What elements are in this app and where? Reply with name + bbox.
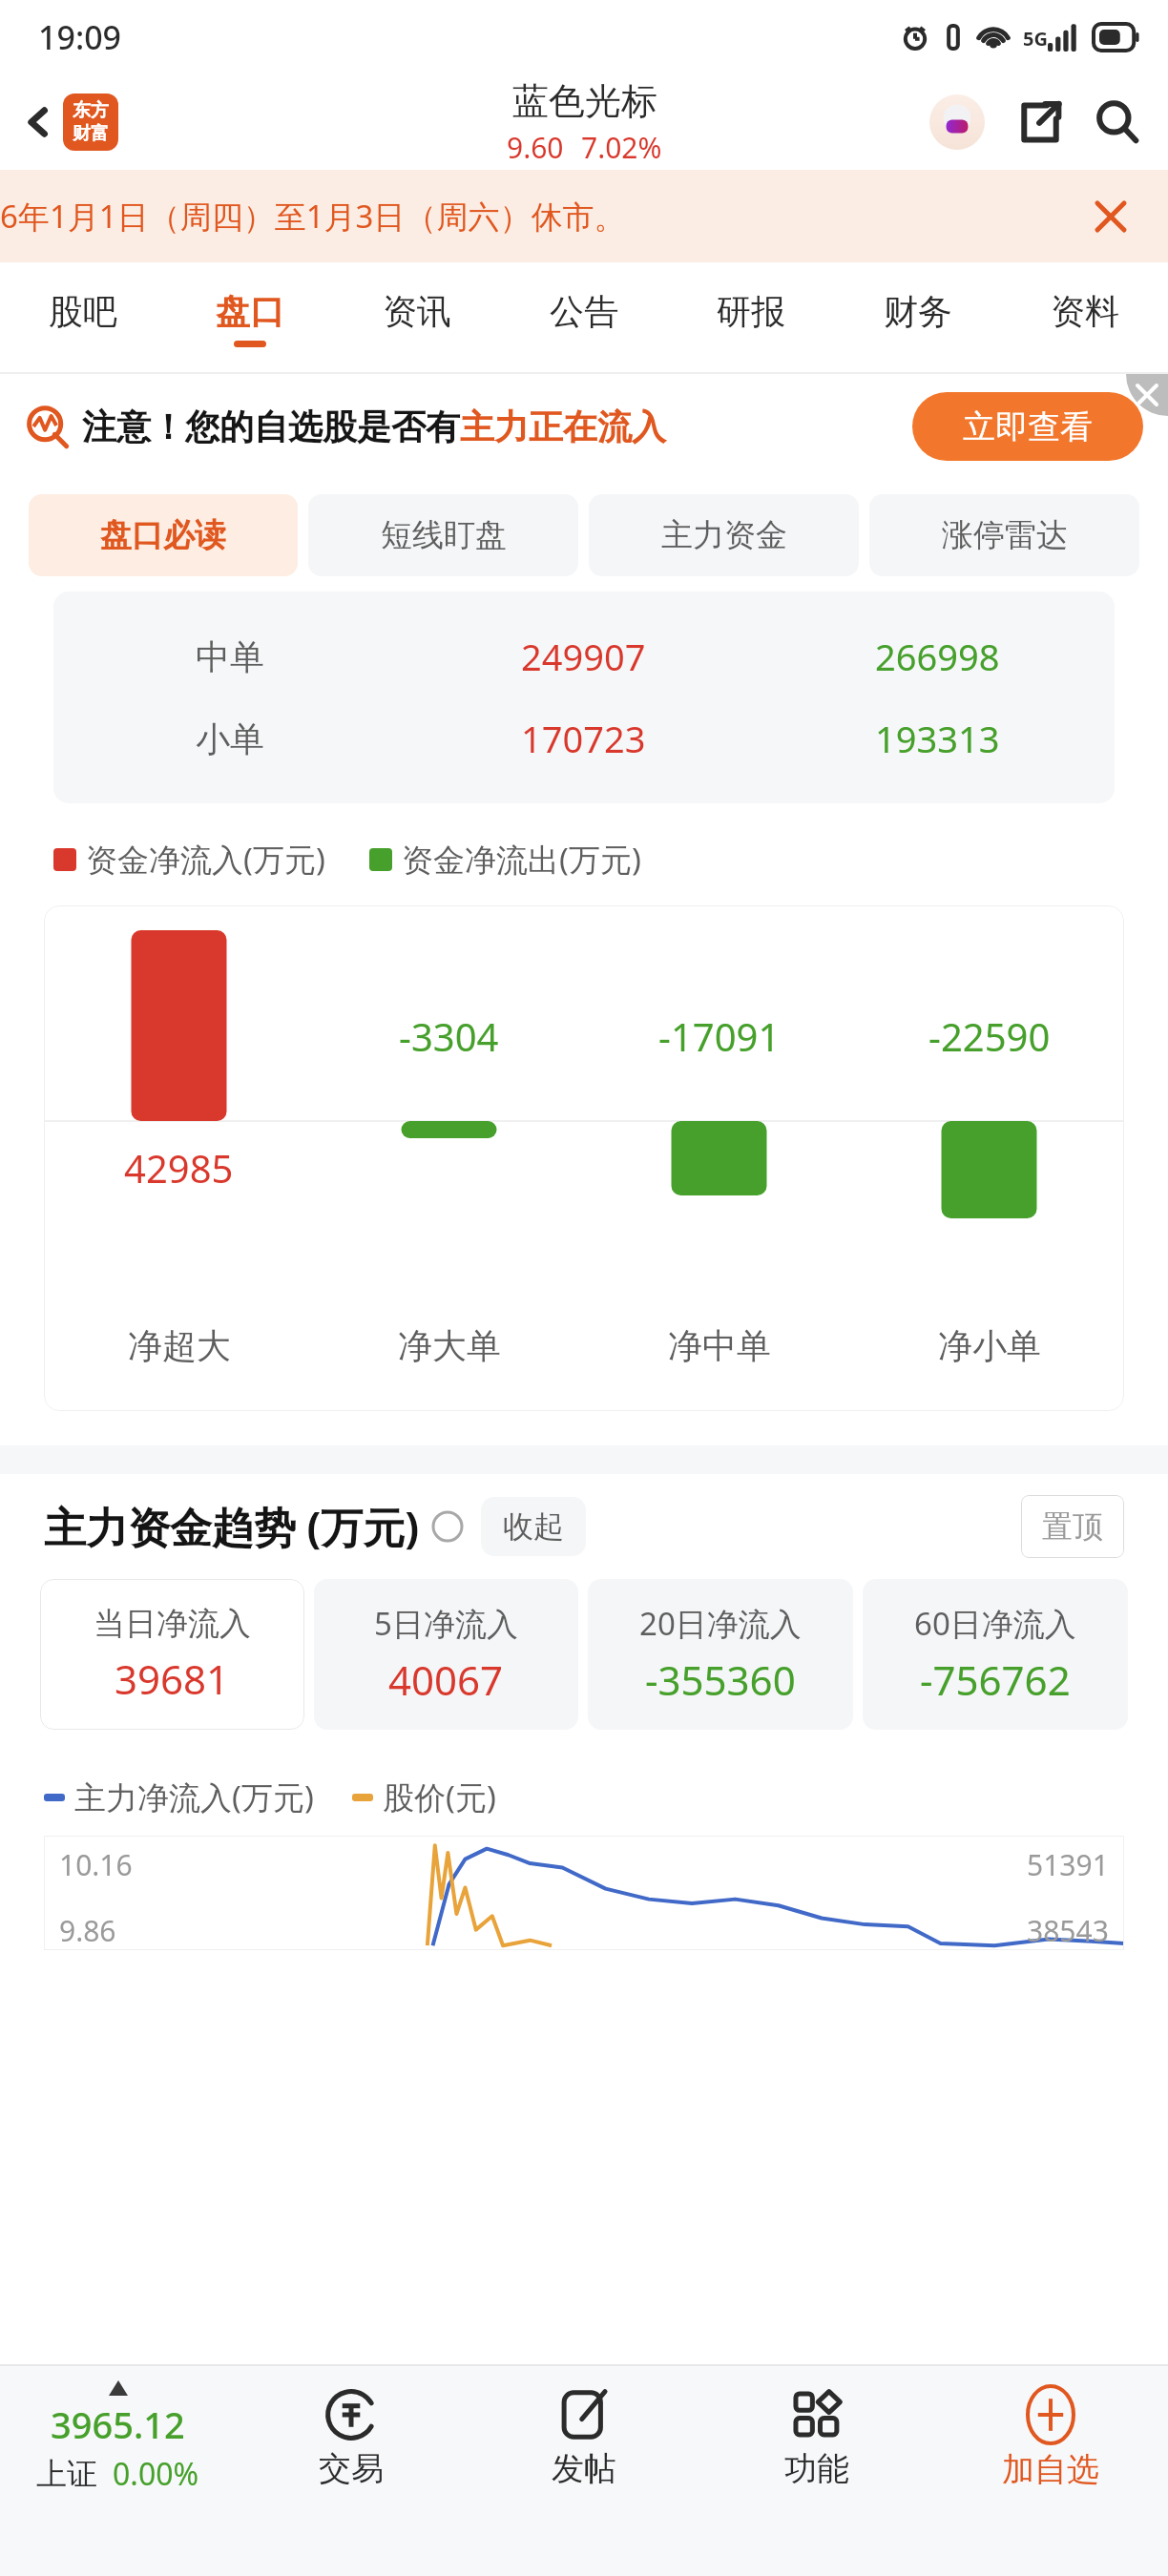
staticText: 发帖 (552, 2448, 616, 2489)
button[interactable]: 20日净流入 (588, 1579, 853, 1730)
staticText: 当日净流入 (94, 1604, 251, 1644)
staticText: 净小单 (938, 1324, 1041, 1367)
staticText: 股吧 (49, 290, 117, 333)
staticText: 财富 (73, 122, 109, 145)
staticText: 中单 (196, 635, 264, 678)
staticText: 10.16 (59, 1845, 133, 1884)
staticText: -355360 (645, 1652, 796, 1707)
staticText: 短线盯盘 (381, 515, 507, 555)
staticText: 涨停雷达 (942, 515, 1068, 555)
staticText: 38543 (1027, 1911, 1109, 1950)
staticText: 5G (1023, 26, 1048, 52)
staticText: 盘口必读 (100, 515, 226, 555)
staticText: 财务 (884, 290, 952, 333)
staticText: 5日净流入 (374, 1602, 518, 1645)
staticText: 3965.12 (51, 2399, 185, 2449)
staticText: 资金净流出(万元) (402, 838, 641, 881)
staticText: 资料 (1051, 290, 1119, 333)
staticText: 净中单 (668, 1324, 771, 1367)
staticText: 39681 (115, 1652, 230, 1706)
staticText: 0.00% (113, 2453, 199, 2495)
staticText: 42985 (124, 1142, 234, 1194)
staticText: 19:09 (38, 15, 122, 59)
button[interactable]: 60日净流入 (863, 1579, 1128, 1730)
button[interactable]: 盘口 (166, 262, 333, 374)
button[interactable]: Back (13, 86, 126, 158)
button[interactable]: Close notice (1094, 199, 1128, 234)
staticText: 266998 (875, 632, 1000, 681)
button[interactable]: 资料 (1001, 262, 1168, 374)
button[interactable]: 发帖 (468, 2366, 700, 2509)
staticText: -22590 (928, 1010, 1051, 1062)
staticText: 9.86 (59, 1911, 116, 1950)
staticText: -756762 (920, 1652, 1071, 1707)
staticText: -17091 (658, 1010, 781, 1062)
button[interactable]: 资讯 (333, 262, 500, 374)
staticText: 9.60 (507, 128, 564, 167)
button[interactable]: Help (431, 1510, 464, 1543)
button[interactable]: AI assistant (929, 94, 985, 150)
staticText: 249907 (521, 632, 646, 681)
button[interactable]: Share (1019, 101, 1061, 143)
button[interactable]: 立即查看 (912, 392, 1143, 461)
button[interactable]: 收起 (481, 1497, 586, 1556)
staticText: 193313 (875, 714, 1000, 763)
staticText: 资金净流入(万元) (86, 838, 325, 881)
staticText: 主力净流入(万元) (74, 1776, 314, 1818)
button[interactable]: 当日净流入 (40, 1579, 304, 1730)
staticText: 20日净流入 (639, 1602, 802, 1645)
staticText: 蓝色光标 (512, 78, 657, 124)
staticText: 公告 (550, 290, 618, 333)
staticText: 收起 (503, 1507, 564, 1546)
staticText: 注意！您的自选股是否有 (82, 405, 460, 448)
button[interactable]: 短线盯盘 (308, 494, 578, 576)
staticText: 研报 (717, 290, 785, 333)
staticText: 净大单 (398, 1324, 501, 1367)
button[interactable]: 涨停雷达 (869, 494, 1139, 576)
staticText: 加自选 (1002, 2449, 1099, 2490)
staticText: 6年1月1日（周四）至1月3日（周六）休市。 (0, 195, 626, 238)
button[interactable]: 加自选 (933, 2366, 1168, 2509)
staticText: 东方 (73, 99, 109, 122)
staticText: 上证 (36, 2455, 97, 2493)
button[interactable]: 3965.12 (0, 2366, 235, 2509)
staticText: 60日净流入 (914, 1602, 1076, 1645)
staticText: 股价(元) (383, 1776, 496, 1818)
staticText: 功能 (784, 2448, 849, 2489)
staticText: 主力资金趋势 (万元) (44, 1498, 420, 1555)
button[interactable]: 盘口必读 (29, 494, 298, 576)
staticText: 资讯 (383, 290, 451, 333)
staticText: 净超大 (128, 1324, 231, 1367)
button[interactable]: Search (1095, 100, 1139, 144)
button[interactable]: 公告 (500, 262, 667, 374)
staticText: 交易 (319, 2448, 384, 2489)
staticText: 170723 (521, 714, 646, 763)
button[interactable]: 主力资金 (589, 494, 859, 576)
staticText: -3304 (399, 1010, 499, 1062)
staticText: 小单 (196, 717, 264, 760)
staticText: 盘口 (216, 290, 284, 333)
button[interactable]: 注意！您的自选股是否有 (25, 374, 1143, 479)
button[interactable]: 研报 (667, 262, 834, 374)
staticText: 7.02% (581, 128, 662, 167)
button[interactable]: 功能 (700, 2366, 933, 2509)
button[interactable]: 股吧 (0, 262, 166, 374)
staticText: 主力正在流入 (460, 405, 666, 448)
button[interactable]: 交易 (235, 2366, 468, 2509)
button[interactable]: 财务 (834, 262, 1001, 374)
staticText: 立即查看 (963, 406, 1093, 447)
staticText: 40067 (388, 1652, 504, 1707)
button[interactable]: 5日净流入 (314, 1579, 578, 1730)
staticText: 主力资金 (661, 515, 787, 555)
staticText: 置顶 (1042, 1507, 1103, 1546)
staticText: 51391 (1027, 1845, 1109, 1884)
button[interactable]: Close ad (1126, 374, 1168, 416)
button[interactable]: 置顶 (1021, 1495, 1124, 1558)
